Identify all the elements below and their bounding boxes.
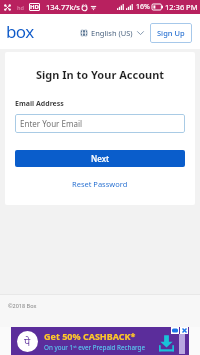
staticText: hd <box>17 4 25 11</box>
button[interactable]: पे <box>11 327 189 355</box>
button[interactable]: AdChoices <box>171 327 179 334</box>
staticText: HD <box>30 3 39 11</box>
staticText: पे <box>24 334 31 349</box>
staticText: Next <box>91 153 110 164</box>
staticText: Sign In to Your Account <box>15 67 185 82</box>
staticText: Enter Your Email <box>20 118 83 129</box>
staticText: 134.77k/s <box>46 2 80 12</box>
staticText: English (US) <box>91 28 133 38</box>
staticText: Get 50% CASHBACK* <box>44 330 136 342</box>
button[interactable]: Language <box>80 26 144 40</box>
button[interactable]: Reset Password <box>70 177 130 191</box>
staticText: box <box>6 20 34 43</box>
staticText: 12:36 PM <box>165 2 198 12</box>
button[interactable]: Enter Your Email <box>15 114 185 133</box>
button[interactable]: Close ad <box>180 327 188 334</box>
staticText: 16% <box>136 2 150 12</box>
button[interactable]: Sign Up <box>150 23 192 43</box>
staticText: On your 1ˢᵗ ever Prepaid Recharge <box>44 343 145 352</box>
staticText: ©2018 Box <box>8 302 37 309</box>
staticText: Sign Up <box>157 28 185 38</box>
other: Install <box>158 335 175 352</box>
staticText: Email Address <box>15 99 64 109</box>
button[interactable]: Next <box>15 150 185 167</box>
other: Language <box>80 29 88 37</box>
